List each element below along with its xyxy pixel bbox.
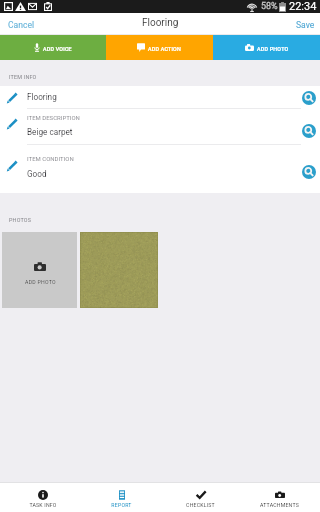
button[interactable]: ADD PHOTO (213, 35, 320, 60)
staticText: ITEM CONDITION (27, 155, 74, 162)
button[interactable]: Save (287, 13, 320, 35)
staticText: Save (296, 20, 315, 30)
staticText: ITEM INFO (9, 74, 37, 80)
staticText: TASK INFO (29, 502, 57, 508)
staticText: 58% (261, 1, 278, 12)
button[interactable]: ITEM CONDITION (0, 145, 320, 193)
staticText: Cancel (8, 20, 35, 30)
button[interactable]: Search (302, 165, 316, 179)
staticText: ADD ACTION (148, 46, 182, 52)
staticText: ADD PHOTO (25, 279, 56, 285)
staticText: ATTACHMENTS (260, 502, 299, 508)
staticText: CHECKLIST (186, 502, 215, 508)
button[interactable]: ADD ACTION (106, 35, 213, 60)
staticText: ADD PHOTO (257, 46, 289, 52)
staticText: 22:34 (289, 0, 317, 13)
button[interactable]: REPORT (82, 483, 161, 512)
staticText: Beige carpet (27, 127, 73, 137)
staticText: REPORT (111, 502, 132, 508)
button[interactable]: ITEM DESCRIPTION (0, 109, 320, 144)
button[interactable] (80, 232, 158, 308)
staticText: PHOTOS (9, 217, 32, 223)
button[interactable]: Flooring (0, 86, 320, 108)
staticText: Flooring (27, 92, 57, 102)
button[interactable]: TASK INFO (3, 483, 82, 512)
button[interactable]: Cancel (0, 13, 43, 35)
button[interactable]: CHECKLIST (161, 483, 240, 512)
button[interactable]: ADD VOICE (0, 35, 106, 60)
button[interactable]: ATTACHMENTS (240, 483, 319, 512)
button[interactable]: Search (302, 124, 316, 138)
staticText: ADD VOICE (43, 46, 72, 52)
staticText: Good (27, 169, 47, 179)
staticText: Flooring (142, 17, 179, 29)
button[interactable]: ADD PHOTO (2, 232, 77, 308)
staticText: ITEM DESCRIPTION (27, 114, 80, 121)
button[interactable]: Search (302, 91, 316, 105)
